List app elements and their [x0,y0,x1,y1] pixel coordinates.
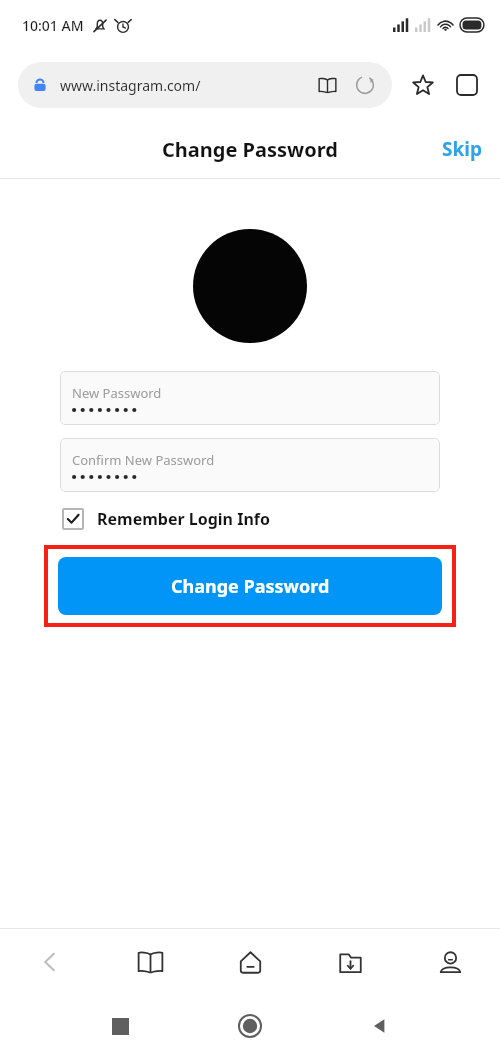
button[interactable]: Reload [352,72,378,98]
staticText: Change Password [171,574,330,599]
button[interactable]: Back [0,929,100,995]
button[interactable]: www.instagram.com/ [18,62,392,108]
button[interactable]: Skip [424,126,500,172]
staticText: Confirm New Password [72,451,215,469]
button[interactable]: New Password [60,371,440,425]
staticText: Remember Login Info [97,508,270,530]
button[interactable]: Back [358,1004,402,1048]
staticText: Change Password [162,136,338,163]
button[interactable]: Profile photo [193,229,307,343]
button[interactable]: Reader [100,929,200,995]
staticText: 10:01 AM [22,16,84,35]
button[interactable]: Home [228,1004,272,1048]
button[interactable]: Confirm New Password [60,438,440,492]
staticText: www.instagram.com/ [60,76,201,95]
button[interactable]: Tabs [450,68,484,102]
button[interactable]: Remember Login Info [62,508,438,530]
button[interactable]: Profile [400,929,500,995]
button[interactable]: Reader mode [314,72,340,98]
staticText: New Password [72,384,162,402]
button[interactable]: Change Password [58,557,442,615]
staticText: Skip [442,136,482,162]
button[interactable]: Downloads [300,929,400,995]
button[interactable]: Bookmark [406,68,440,102]
button[interactable]: Home [200,929,300,995]
button[interactable]: Recents [98,1004,142,1048]
